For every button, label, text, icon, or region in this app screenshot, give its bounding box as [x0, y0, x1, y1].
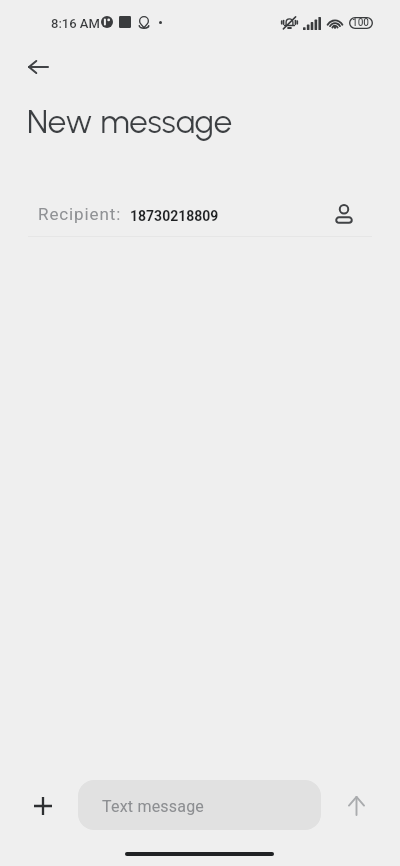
staticText: 18730218809 — [130, 208, 219, 224]
staticText: New message — [27, 102, 233, 142]
button[interactable]: Text message — [78, 780, 321, 830]
staticText: 8:16 AM — [51, 16, 100, 31]
button[interactable]: Back — [16, 44, 61, 89]
staticText: 100 — [352, 17, 370, 29]
staticText: Text message — [102, 797, 205, 816]
button[interactable]: Choose contact — [322, 193, 366, 235]
button[interactable]: Recipient: — [0, 193, 400, 235]
staticText: Recipient: — [38, 204, 122, 224]
button[interactable]: Add attachment — [20, 783, 65, 828]
button[interactable]: Send — [334, 783, 379, 828]
